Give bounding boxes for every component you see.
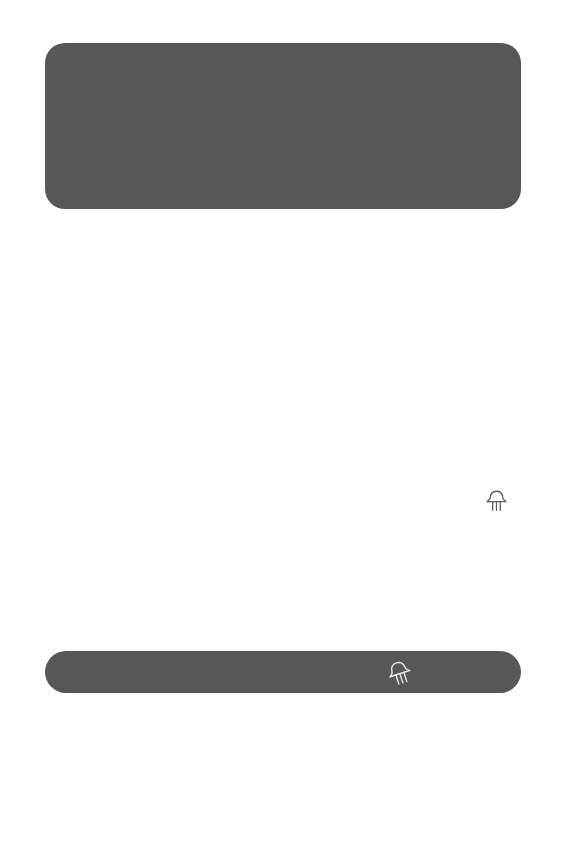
button[interactable]: Recipes (386, 658, 413, 687)
button[interactable]: Featured card (45, 43, 521, 209)
button[interactable]: Recipes (487, 490, 506, 511)
button[interactable]: Bottom bar (45, 651, 521, 693)
